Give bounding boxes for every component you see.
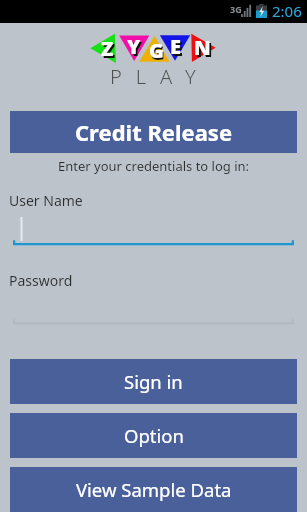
staticText: Password (9, 271, 73, 290)
staticText: N (194, 34, 211, 61)
staticText: Z (103, 37, 116, 64)
staticText: Y (127, 33, 141, 60)
staticText: N (196, 36, 213, 63)
button[interactable]: Sign in (10, 359, 297, 404)
button[interactable]: Credit Release (10, 111, 297, 153)
staticText: E (170, 33, 181, 60)
staticText: Option (124, 423, 184, 448)
staticText: E (172, 35, 183, 62)
staticText: Credit Release (75, 117, 233, 147)
staticText: Enter your credentials to log in: (58, 157, 250, 175)
staticText: G (150, 39, 165, 66)
button[interactable]: View Sample Data (10, 467, 297, 512)
button[interactable]: Option (10, 413, 297, 458)
staticText: View Sample Data (76, 477, 232, 502)
staticText: Z (101, 35, 114, 62)
button[interactable] (13, 215, 294, 246)
staticText: User Name (9, 191, 83, 210)
staticText: 3G (230, 3, 242, 15)
staticText: G (149, 37, 164, 64)
staticText: PLAY (110, 63, 210, 90)
staticText: 2:06 (272, 1, 302, 21)
staticText: Sign in (124, 369, 183, 394)
staticText: Y (129, 35, 143, 62)
